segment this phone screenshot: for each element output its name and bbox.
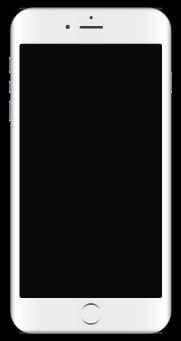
other: iPhone device mockup xyxy=(0,0,181,341)
